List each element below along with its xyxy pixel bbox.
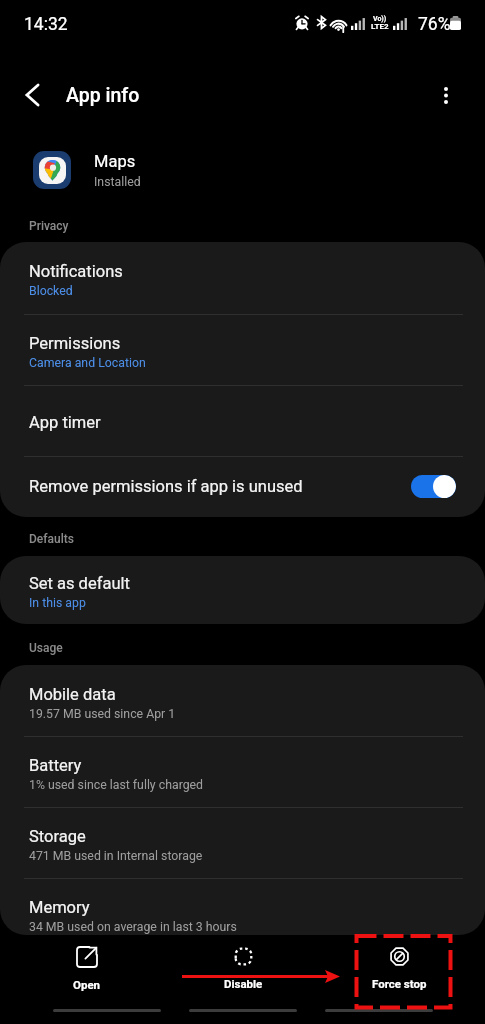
staticText: Vo)) <box>373 15 387 23</box>
button[interactable]: App timer <box>0 385 485 456</box>
staticText: Defaults <box>29 532 74 546</box>
staticText: 34 MB used on average in last 3 hours <box>29 920 237 934</box>
staticText: Open <box>73 978 101 991</box>
button[interactable]: Disable <box>165 936 321 1002</box>
button[interactable]: Open <box>8 936 165 1002</box>
button[interactable]: Navigation <box>189 1009 297 1012</box>
staticText: Notifications <box>29 262 123 281</box>
button[interactable]: Remove permissions if app is unused <box>0 456 485 517</box>
staticText: Permissions <box>29 334 121 353</box>
staticText: Memory <box>29 898 90 917</box>
staticText: Installed <box>94 175 141 189</box>
button[interactable]: Memory <box>0 878 485 935</box>
button[interactable]: Permissions <box>0 314 485 385</box>
staticText: Usage <box>29 641 63 655</box>
staticText: 471 MB used in Internal storage <box>29 849 203 863</box>
staticText: 1% used since last fully charged <box>29 778 204 792</box>
button[interactable]: Set as default <box>0 556 485 624</box>
staticText: Battery <box>29 756 82 775</box>
button[interactable]: More options <box>424 73 468 117</box>
staticText: In this app <box>29 596 86 610</box>
staticText: Remove permissions if app is unused <box>29 477 411 496</box>
button[interactable]: Force stop <box>321 936 477 1002</box>
staticText: Blocked <box>29 284 73 298</box>
button[interactable]: Mobile data <box>0 665 485 736</box>
staticText: 14:32 <box>24 14 68 35</box>
staticText: Set as default <box>29 574 130 593</box>
button[interactable]: Navigation <box>53 1009 161 1012</box>
staticText: Disable <box>224 977 263 990</box>
staticText: App timer <box>29 413 101 432</box>
button[interactable]: Battery <box>0 736 485 807</box>
staticText: Privacy <box>29 219 69 233</box>
staticText: Storage <box>29 827 86 846</box>
button[interactable]: Maps <box>0 140 485 200</box>
staticText: 76% <box>418 14 451 35</box>
staticText: App info <box>66 84 140 107</box>
staticText: Camera and Location <box>29 356 146 370</box>
button[interactable]: Navigation <box>325 1009 433 1012</box>
staticText: Mobile data <box>29 685 116 704</box>
staticText: 19.57 MB used since Apr 1 <box>29 707 176 721</box>
button[interactable]: Notifications <box>0 242 485 314</box>
staticText: Force stop <box>372 977 427 990</box>
staticText: Maps <box>94 152 136 171</box>
button[interactable]: Navigate up <box>9 72 55 118</box>
staticText: LTE2 <box>371 22 389 31</box>
button[interactable]: Storage <box>0 807 485 878</box>
